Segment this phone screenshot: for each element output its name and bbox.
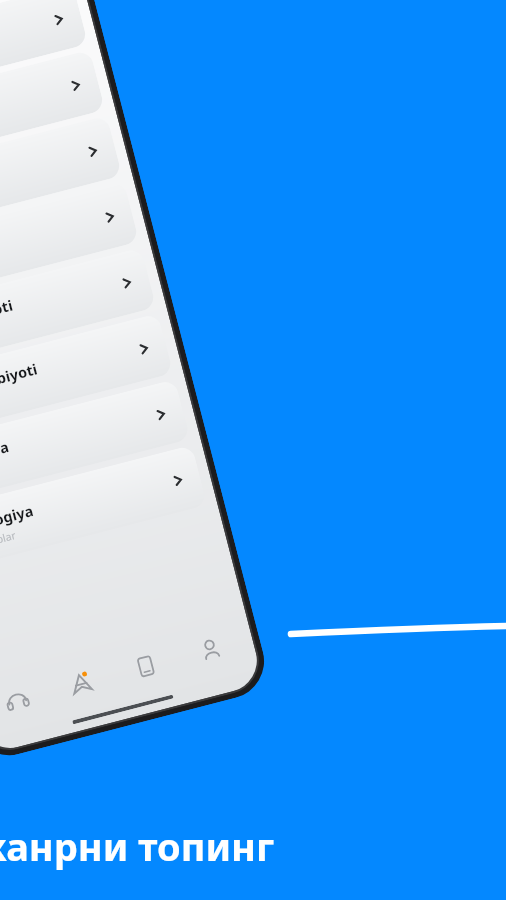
button[interactable]: Jahon adabiyoti	[0, 247, 156, 374]
staticText: жанрни топинг	[0, 820, 274, 872]
button[interactable]: Psixologiya	[0, 445, 207, 571]
button[interactable]: Profile	[171, 614, 250, 685]
button[interactable]: Detektiv	[0, 116, 122, 242]
staticText: O'zbek adabiyoti	[0, 358, 40, 408]
button[interactable]: Biografiya	[0, 379, 190, 505]
button[interactable]: Home	[42, 648, 120, 718]
button[interactable]: Audio books	[0, 664, 56, 735]
button[interactable]: O'zbek adabiyoti	[0, 313, 173, 440]
button[interactable]: Library	[106, 631, 185, 702]
staticText: Biografiya	[0, 436, 11, 474]
staticText: Jahon adabiyoti	[0, 294, 15, 342]
staticText: Psixologiya	[0, 500, 36, 540]
button[interactable]: Bolalar uchun	[0, 0, 88, 110]
button[interactable]: Biografiya	[0, 50, 105, 176]
button[interactable]: Fantastika	[0, 181, 139, 308]
staticText: 731 kitoblar	[0, 528, 17, 556]
